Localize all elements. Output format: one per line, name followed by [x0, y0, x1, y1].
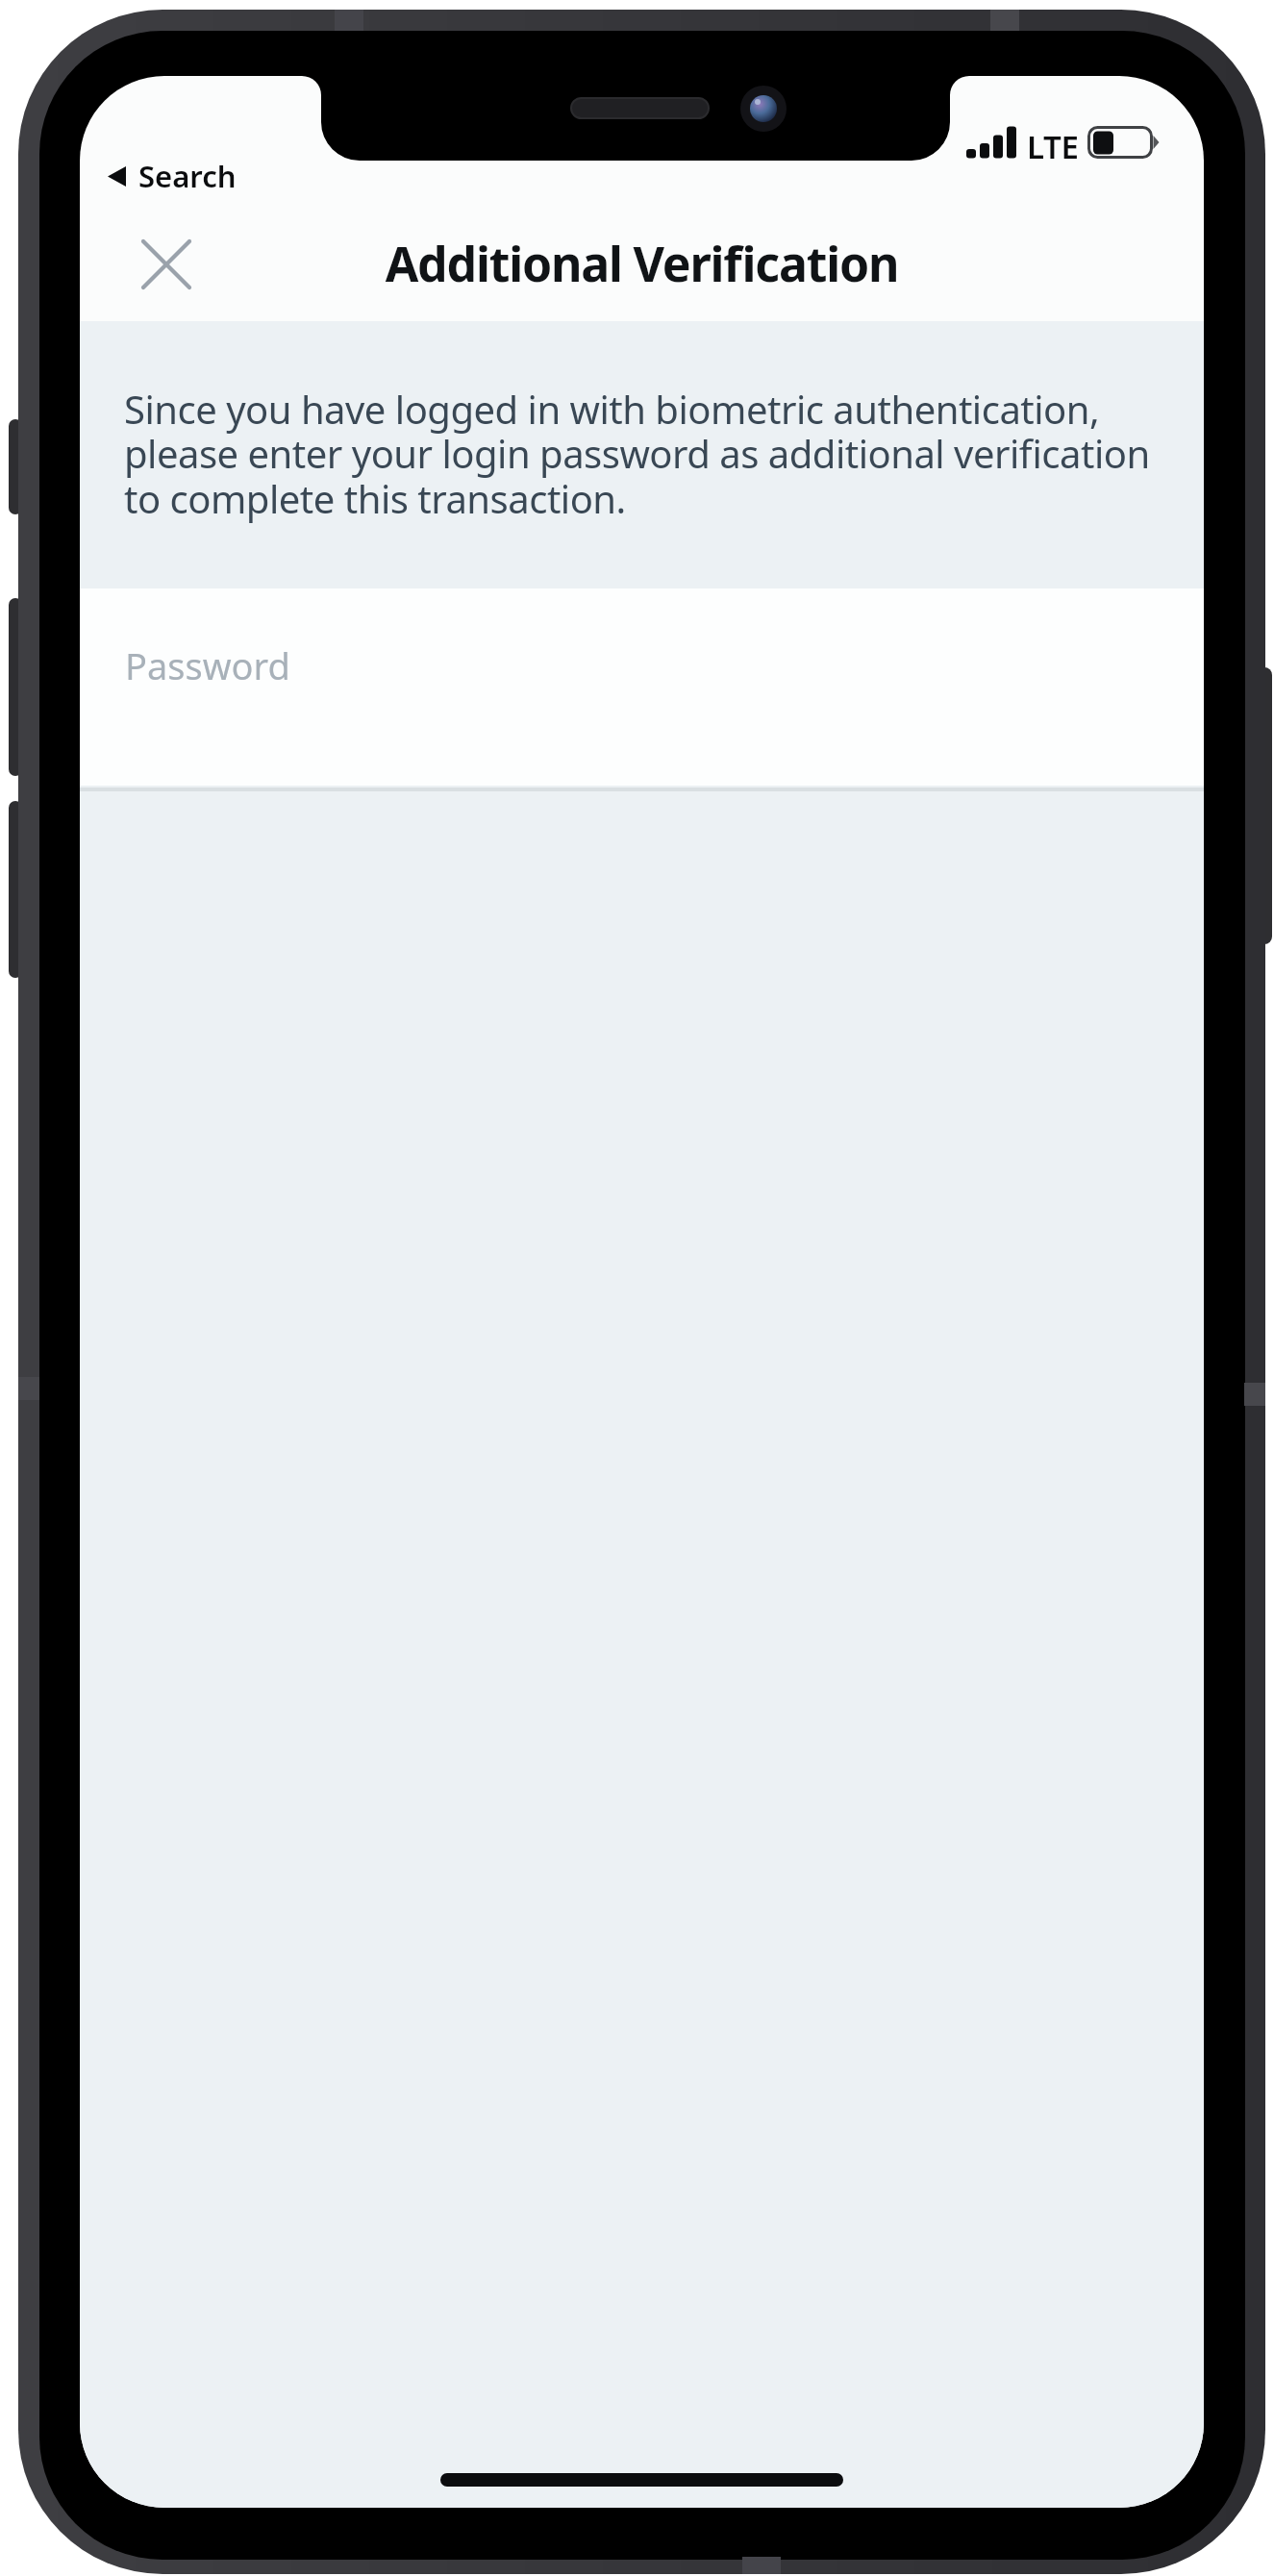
staticText: LTE [1027, 125, 1079, 168]
button[interactable] [135, 233, 198, 296]
staticText: Since you have logged in with biometric … [124, 383, 1100, 435]
staticText: Additional Verification [80, 231, 1204, 296]
button[interactable]: Password [80, 588, 1204, 786]
button[interactable]: Search [108, 156, 237, 196]
staticText: please enter your login password as addi… [124, 427, 1150, 479]
staticText: Password [125, 640, 290, 690]
staticText: to complete this transaction. [124, 472, 626, 524]
staticText: Search [138, 156, 237, 196]
